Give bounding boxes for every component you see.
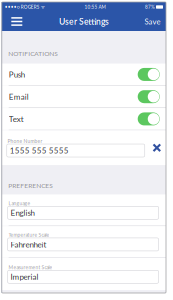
button[interactable]: Menu: [6, 12, 28, 31]
staticText: Push: [9, 70, 25, 79]
staticText: PREFERENCES: [8, 182, 53, 189]
staticText: 1555 555 5555: [10, 146, 69, 155]
staticText: User Settings: [59, 16, 109, 27]
staticText: Text: [9, 114, 24, 124]
staticText: Measurement Scale: [8, 264, 52, 270]
staticText: ••••○ ROGERS ᯤ: [5, 4, 45, 10]
staticText: Language: [8, 200, 30, 206]
staticText: Save: [144, 17, 160, 26]
staticText: Email: [9, 92, 29, 101]
button[interactable]: Text: [2, 108, 166, 130]
staticText: 10:55 AM: [84, 4, 105, 10]
button[interactable]: Temperature Scale: [2, 226, 166, 257]
staticText: Fahrenheit: [11, 240, 47, 249]
staticText: Phone Number: [7, 138, 42, 144]
staticText: Temperature Scale: [8, 232, 49, 238]
staticText: 87%: [145, 4, 155, 10]
staticText: English: [11, 208, 35, 218]
button[interactable]: Language: [2, 194, 166, 226]
button[interactable]: Save: [138, 12, 160, 31]
staticText: NOTIFICATIONS: [8, 50, 58, 57]
button[interactable]: Phone Number: [2, 130, 166, 165]
button[interactable]: Measurement Scale: [2, 258, 166, 290]
button[interactable]: Email: [2, 86, 166, 107]
button[interactable]: Push: [2, 64, 166, 85]
staticText: Imperial: [11, 272, 39, 282]
